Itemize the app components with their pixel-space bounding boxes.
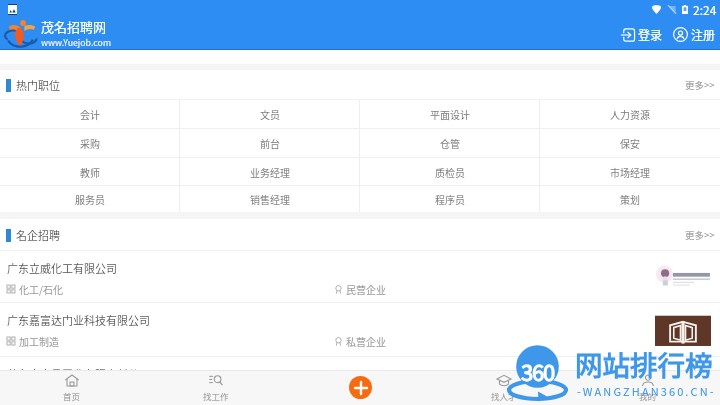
- button[interactable]: 前台: [180, 129, 360, 157]
- staticText: 360: [521, 355, 555, 387]
- button[interactable]: 销售经理: [180, 186, 360, 212]
- staticText: 保安: [620, 136, 640, 150]
- staticText: -WANGZHAN360.CN-: [577, 383, 716, 399]
- staticText: 仓管: [440, 136, 460, 150]
- staticText: 教师: [80, 165, 100, 179]
- button[interactable]: 业务经理: [180, 158, 360, 185]
- staticText: 市场经理: [610, 165, 650, 179]
- button[interactable]: 服务员: [0, 186, 180, 212]
- staticText: 加工制造: [19, 334, 59, 348]
- staticText: 私营企业: [346, 334, 386, 348]
- staticText: 找工作: [203, 390, 229, 402]
- staticText: 茂名市大昌置业有限责任公司: [7, 366, 150, 382]
- staticText: 更多>>: [685, 78, 715, 92]
- staticText: 前台: [260, 136, 280, 150]
- staticText: 采购: [80, 136, 100, 150]
- staticText: www.Yuejob.com: [41, 36, 112, 49]
- staticText: 网站排行榜: [575, 344, 713, 384]
- staticText: 更多>>: [685, 228, 715, 242]
- button[interactable]: 人力资源: [540, 100, 720, 128]
- button[interactable]: 登录: [617, 22, 666, 47]
- button[interactable]: 找人才: [432, 370, 576, 405]
- staticText: 策划: [620, 192, 640, 206]
- staticText: 业务经理: [250, 165, 290, 179]
- staticText: 会计: [80, 107, 100, 121]
- staticText: 民营企业: [346, 388, 386, 402]
- button[interactable]: 程序员: [360, 186, 540, 212]
- staticText: 热门职位: [16, 77, 60, 93]
- button[interactable]: 平面设计: [360, 100, 540, 128]
- staticText: 服务员: [75, 192, 105, 206]
- button[interactable]: 会计: [0, 100, 180, 128]
- staticText: 广东嘉富达门业科技有限公司: [7, 312, 150, 328]
- button[interactable]: 发布: [349, 376, 372, 399]
- staticText: 化工/石化: [19, 282, 63, 296]
- button[interactable]: 市场经理: [540, 158, 720, 185]
- button[interactable]: 我的: [576, 370, 720, 405]
- button[interactable]: 广东立威化工有限公司: [0, 251, 720, 303]
- button[interactable]: 质检员: [360, 158, 540, 185]
- button[interactable]: 找工作: [144, 370, 288, 405]
- staticText: 人力资源: [610, 107, 650, 121]
- staticText: 注册: [691, 26, 716, 43]
- button[interactable]: 策划: [540, 186, 720, 212]
- button[interactable]: 采购: [0, 129, 180, 157]
- button[interactable]: 广东嘉富达门业科技有限公司: [0, 303, 720, 357]
- button[interactable]: 更多>>: [675, 222, 720, 248]
- button[interactable]: 文员: [180, 100, 360, 128]
- button[interactable]: 教师: [0, 158, 180, 185]
- staticText: 民营企业: [346, 282, 386, 296]
- staticText: 登录: [638, 26, 663, 43]
- button[interactable]: 茂名市大昌置业有限责任公司: [0, 357, 720, 405]
- button[interactable]: 保安: [540, 129, 720, 157]
- button[interactable]: 首页: [0, 370, 144, 405]
- staticText: 文员: [260, 107, 280, 121]
- button[interactable]: 更多>>: [675, 72, 720, 98]
- staticText: 质检员: [435, 165, 465, 179]
- staticText: 销售经理: [250, 192, 290, 206]
- staticText: 我的: [639, 390, 657, 402]
- button[interactable]: 仓管: [360, 129, 540, 157]
- staticText: 茂名招聘网: [41, 17, 107, 36]
- staticText: 程序员: [435, 192, 465, 206]
- staticText: 平面设计: [430, 107, 470, 121]
- staticText: 找人才: [491, 390, 517, 402]
- staticText: 首页: [63, 390, 81, 402]
- staticText: 名企招聘: [16, 227, 60, 243]
- staticText: 2:24: [693, 1, 717, 18]
- button[interactable]: 注册: [670, 22, 719, 47]
- staticText: 广东立威化工有限公司: [7, 260, 117, 276]
